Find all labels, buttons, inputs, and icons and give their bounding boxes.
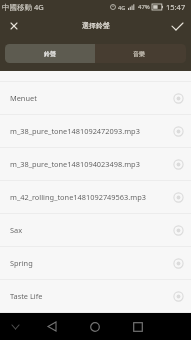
staticText: 15:47 bbox=[166, 2, 186, 12]
staticText: 選擇鈴聲 bbox=[82, 21, 110, 30]
button[interactable]: Spring bbox=[0, 247, 191, 279]
button[interactable]: Confirm bbox=[163, 11, 191, 41]
button[interactable]: m_42_rolling_tone1481092749563.mp3 bbox=[0, 181, 191, 213]
button[interactable]: m_38_pure_tone1481092472093.mp3 bbox=[0, 115, 191, 147]
staticText: 47% bbox=[138, 3, 150, 11]
button[interactable]: Close bbox=[0, 11, 28, 41]
button[interactable]: Menuet bbox=[0, 82, 191, 114]
staticText: 音樂 bbox=[133, 50, 145, 58]
staticText: Sax bbox=[10, 225, 165, 235]
staticText: Taste Life bbox=[10, 291, 165, 301]
button[interactable]: Sax bbox=[0, 214, 191, 246]
button[interactable]: Back bbox=[31, 313, 73, 340]
button[interactable]: Hide bbox=[0, 313, 31, 340]
staticText: Spring bbox=[10, 258, 165, 268]
button[interactable]: Taste Life bbox=[0, 280, 191, 312]
button[interactable]: m_38_pure_tone1481094023498.mp3 bbox=[0, 148, 191, 180]
button[interactable]: 音樂 bbox=[95, 44, 186, 63]
button[interactable]: 鈴聲 bbox=[5, 44, 95, 63]
button[interactable]: Home bbox=[73, 313, 116, 340]
staticText: m_38_pure_tone1481094023498.mp3 bbox=[10, 159, 165, 169]
staticText: m_38_pure_tone1481092472093.mp3 bbox=[10, 126, 165, 136]
staticText: 鈴聲 bbox=[44, 50, 56, 58]
staticText: 中國移動 4G bbox=[2, 2, 44, 12]
button[interactable]: Recents bbox=[116, 313, 159, 340]
staticText: Menuet bbox=[10, 93, 165, 103]
staticText: 4G bbox=[118, 4, 126, 11]
staticText: m_42_rolling_tone1481092749563.mp3 bbox=[10, 192, 165, 202]
